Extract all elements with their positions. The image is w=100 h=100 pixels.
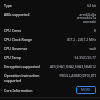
staticText: 54.35/C/25.77 xyxy=(47,55,96,59)
button[interactable]: MORE xyxy=(76,86,96,94)
button[interactable]: ABIs supported xyxy=(0,10,100,26)
button[interactable]: CPU Governor xyxy=(0,44,100,53)
staticText: CPU Governor xyxy=(4,46,45,51)
button[interactable]: Encryption supported xyxy=(0,62,100,71)
staticText: CPU Temp xyxy=(4,55,45,60)
staticText: Type xyxy=(4,3,45,8)
staticText: PMULL,ASIMD,BF16,RTI xyxy=(46,73,96,77)
button[interactable]: CPU Clock Range xyxy=(0,35,100,44)
staticText: AES,SHA1,SHA2,SHA3,SHA512 xyxy=(44,64,96,68)
button[interactable]: Operation instruction supported xyxy=(0,71,100,85)
button[interactable]: CPU Cores xyxy=(0,26,100,35)
staticText: 64 bit xyxy=(47,3,96,7)
staticText: MORE xyxy=(81,88,91,92)
staticText: walt xyxy=(47,46,96,50)
staticText: ABIs supported xyxy=(4,12,45,17)
button[interactable]: Type xyxy=(0,1,100,10)
staticText: Operation instruction supported xyxy=(4,73,44,83)
staticText: Encryption supported xyxy=(4,64,42,69)
button[interactable]: CPU Temp xyxy=(0,53,100,62)
staticText: arm64-v8a armeabi-v7a armeabi xyxy=(47,12,96,24)
staticText: Core Information xyxy=(4,88,33,93)
staticText: CPU Clock Range xyxy=(4,37,45,42)
staticText: CPU Cores xyxy=(4,28,45,33)
staticText: 307.2 - 2457.2 MHz xyxy=(47,37,96,41)
staticText: 8 xyxy=(47,28,96,32)
